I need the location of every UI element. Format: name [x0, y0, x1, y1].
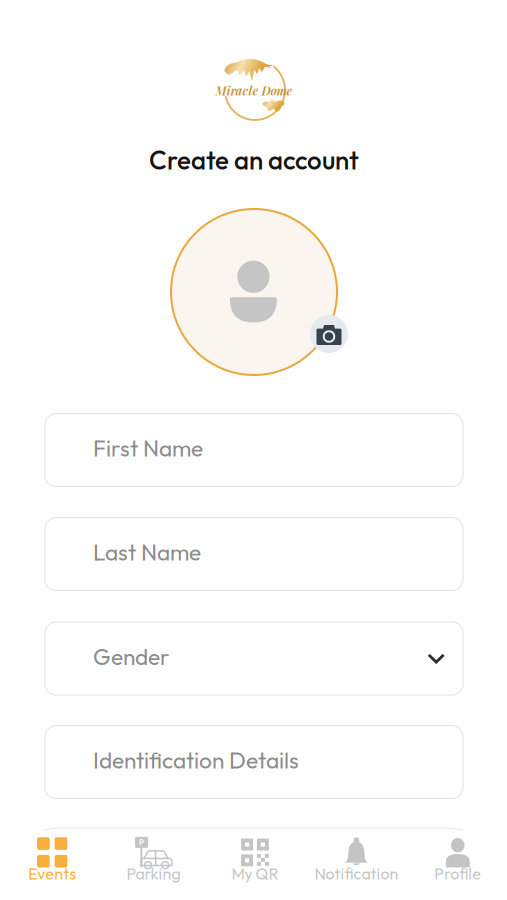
- staticText: P: [139, 837, 144, 847]
- button[interactable]: Gender: [45, 622, 463, 695]
- staticText: Last Name: [93, 538, 201, 566]
- staticText: Gender: [93, 642, 169, 671]
- button[interactable]: Events: [0, 828, 101, 900]
- button[interactable]: My QR: [203, 828, 304, 900]
- staticText: Miracle Dome: [215, 82, 292, 98]
- button[interactable]: First Name: [45, 413, 463, 486]
- staticText: First Name: [93, 434, 203, 462]
- button[interactable]: Last Name: [45, 517, 463, 590]
- button[interactable]: Profile: [406, 828, 507, 900]
- button[interactable]: Identification Details: [45, 725, 463, 798]
- staticText: Parking: [127, 863, 181, 884]
- staticText: Create an account: [149, 144, 359, 176]
- staticText: Events: [28, 863, 76, 884]
- button[interactable]: P: [101, 828, 203, 900]
- staticText: Notification: [314, 863, 398, 884]
- staticText: Profile: [434, 863, 481, 884]
- staticText: Identification Details: [93, 746, 299, 774]
- staticText: My QR: [231, 863, 278, 884]
- button[interactable]: Change profile photo: [158, 206, 350, 378]
- button[interactable]: Notification: [304, 828, 406, 900]
